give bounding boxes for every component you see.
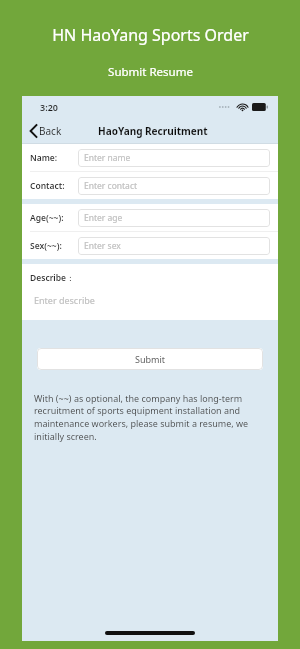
staticText: Sex(~~):	[30, 240, 78, 252]
staticText: Contact:	[30, 180, 78, 192]
staticText: Submit	[135, 353, 166, 365]
button[interactable]: Describe：	[22, 264, 278, 320]
button[interactable]: Enter name	[78, 149, 270, 167]
staticText: Enter describe	[34, 294, 95, 306]
staticText: Back	[39, 124, 62, 138]
staticText: HaoYang Recruitment	[98, 124, 208, 138]
button[interactable]: Enter contact	[78, 177, 270, 195]
staticText: 3:20	[40, 101, 58, 113]
staticText: Enter sex	[84, 240, 121, 252]
staticText: Age(~~):	[30, 212, 78, 224]
button[interactable]: Enter sex	[78, 237, 270, 255]
staticText: With (~~) as optional, the company has l…	[34, 392, 266, 443]
staticText: Enter name	[84, 152, 131, 164]
button[interactable]: Submit	[37, 348, 263, 370]
button[interactable]: Back	[22, 118, 68, 144]
button[interactable]: Enter age	[78, 209, 270, 227]
staticText: Describe：	[30, 272, 75, 284]
staticText: Submit Resume	[108, 64, 193, 80]
staticText: Name:	[30, 152, 78, 164]
staticText: Enter age	[84, 212, 123, 224]
staticText: Enter contact	[84, 180, 138, 192]
staticText: HN HaoYang Sports Order	[52, 24, 249, 46]
